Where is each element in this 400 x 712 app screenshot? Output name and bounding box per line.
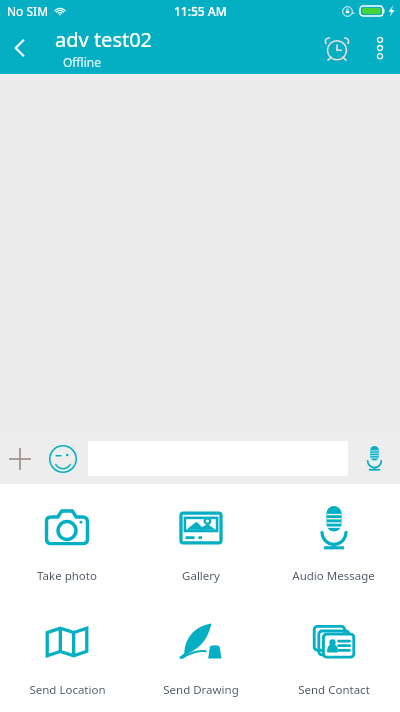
button[interactable]: Alarm <box>314 25 360 71</box>
button[interactable]: Send Drawing <box>134 612 267 702</box>
button[interactable]: More options <box>360 28 400 68</box>
staticText: adv test02 <box>55 26 153 53</box>
staticText: Gallery <box>182 568 220 584</box>
staticText: Send Contact <box>298 682 370 698</box>
button[interactable]: Send Contact <box>267 612 400 702</box>
staticText: No SIM <box>7 3 49 19</box>
button[interactable]: Back <box>0 28 40 68</box>
staticText: 11:55 AM <box>174 3 227 19</box>
staticText: Take photo <box>37 568 97 584</box>
button[interactable]: Emoji <box>44 440 82 478</box>
button[interactable]: Send Location <box>0 612 134 702</box>
staticText: Send Location <box>29 682 106 698</box>
staticText: Offline <box>63 54 102 70</box>
button[interactable]: Record voice message <box>348 433 400 484</box>
button[interactable]: Gallery <box>134 498 267 588</box>
button[interactable]: Add <box>0 439 40 479</box>
staticText: Audio Message <box>292 568 375 584</box>
button[interactable]: Take photo <box>0 498 134 588</box>
button[interactable]: Audio Message <box>267 498 400 588</box>
staticText: Send Drawing <box>163 682 239 698</box>
